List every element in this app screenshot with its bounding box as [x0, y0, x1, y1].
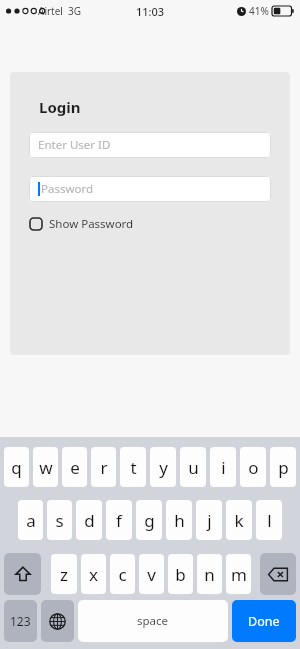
button[interactable]: u: [180, 447, 206, 487]
staticText: z: [60, 563, 68, 586]
button[interactable]: Enter User ID: [29, 132, 271, 158]
button[interactable]: Password: [29, 176, 271, 202]
staticText: o: [248, 456, 259, 479]
button[interactable]: q: [4, 447, 29, 487]
button[interactable]: x: [81, 554, 106, 594]
staticText: w: [39, 456, 53, 479]
staticText: r: [100, 456, 108, 479]
staticText: Login: [39, 97, 81, 117]
button[interactable]: z: [51, 554, 77, 594]
button[interactable]: e: [62, 447, 87, 487]
button[interactable]: m: [226, 554, 251, 594]
button[interactable]: h: [166, 500, 192, 540]
staticText: h: [174, 509, 185, 532]
staticText: x: [89, 563, 98, 586]
staticText: j: [207, 509, 212, 532]
button[interactable]: Switch keyboard: [41, 600, 74, 642]
button[interactable]: g: [136, 500, 162, 540]
staticText: q: [11, 456, 22, 479]
staticText: Enter User ID: [38, 137, 111, 153]
staticText: g: [144, 509, 155, 532]
button[interactable]: Shift: [4, 553, 41, 595]
staticText: 41%: [249, 4, 269, 18]
button[interactable]: d: [76, 500, 102, 540]
button[interactable]: Done: [232, 600, 296, 642]
button[interactable]: c: [110, 554, 135, 594]
button[interactable]: n: [197, 554, 222, 594]
staticText: space: [137, 613, 169, 629]
button[interactable]: r: [91, 447, 116, 487]
button[interactable]: w: [33, 447, 58, 487]
staticText: p: [278, 456, 289, 479]
button[interactable]: p: [270, 447, 296, 487]
button[interactable]: v: [139, 554, 164, 594]
staticText: Password: [41, 181, 94, 197]
button[interactable]: k: [226, 500, 252, 540]
staticText: c: [118, 563, 127, 586]
staticText: Done: [248, 613, 280, 630]
staticText: e: [70, 456, 80, 479]
button[interactable]: i: [210, 447, 236, 487]
staticText: t: [130, 456, 137, 479]
staticText: f: [116, 509, 122, 532]
staticText: n: [204, 563, 215, 586]
button[interactable]: f: [106, 500, 132, 540]
button[interactable]: o: [240, 447, 266, 487]
staticText: Show Password: [49, 216, 134, 232]
staticText: a: [26, 509, 36, 532]
staticText: s: [55, 509, 64, 532]
button[interactable]: Backspace: [260, 553, 296, 595]
staticText: i: [221, 456, 226, 479]
staticText: b: [175, 563, 186, 586]
staticText: 11:03: [136, 4, 165, 19]
staticText: 3G: [68, 4, 81, 18]
staticText: y: [159, 456, 168, 479]
staticText: m: [231, 563, 247, 586]
staticText: u: [188, 456, 199, 479]
button[interactable]: l: [256, 500, 282, 540]
button[interactable]: y: [150, 447, 176, 487]
staticText: k: [234, 509, 244, 532]
staticText: 123: [10, 613, 31, 629]
staticText: v: [147, 563, 156, 586]
button[interactable]: b: [168, 554, 193, 594]
button[interactable]: s: [47, 500, 72, 540]
button[interactable]: space: [78, 600, 228, 642]
button[interactable]: a: [18, 500, 43, 540]
button[interactable]: j: [196, 500, 222, 540]
staticText: l: [267, 509, 272, 532]
button[interactable]: t: [120, 447, 146, 487]
button[interactable]: Show Password: [29, 216, 134, 232]
button[interactable]: 123: [4, 600, 37, 642]
staticText: Airtel: [38, 4, 63, 18]
staticText: d: [84, 509, 95, 532]
